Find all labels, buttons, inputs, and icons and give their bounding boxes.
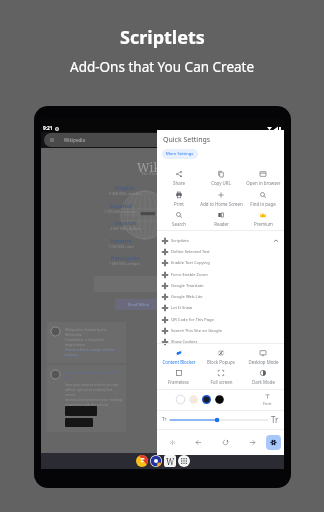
button[interactable]: Full screen bbox=[200, 369, 242, 385]
button[interactable]: Scriptlets bbox=[157, 235, 284, 246]
button[interactable]: Download Wikipedia for Android or iOS bbox=[47, 365, 126, 432]
staticText: Enable Text Copying bbox=[171, 260, 210, 266]
button[interactable]: Text size bbox=[170, 416, 268, 424]
button[interactable] bbox=[94, 276, 158, 292]
staticText: Force Enable Zoom bbox=[171, 272, 208, 278]
button[interactable]: Settings bbox=[266, 435, 281, 450]
button[interactable]: Share bbox=[157, 170, 200, 186]
staticText: W bbox=[166, 456, 175, 467]
staticText: Tr bbox=[162, 416, 167, 423]
button[interactable]: Block Popups bbox=[200, 349, 242, 365]
staticText: Wikipedia is hosted by the Wikimedia Fou… bbox=[65, 327, 121, 357]
button[interactable]: QR Code for This Page bbox=[157, 314, 284, 325]
button[interactable]: Desktop Mode bbox=[242, 349, 284, 365]
staticText: Show Cookies bbox=[171, 339, 198, 345]
button[interactable]: Reload bbox=[212, 429, 239, 455]
staticText: The Free Encyclopedia bbox=[141, 171, 185, 176]
staticText: Copy URL bbox=[211, 180, 231, 186]
staticText: 1 742 000+ voci bbox=[108, 244, 134, 249]
button[interactable]: Background colour bbox=[214, 394, 225, 405]
staticText: More Settings bbox=[166, 151, 194, 157]
button[interactable]: Frameless bbox=[157, 369, 200, 385]
staticText: Google Web Lite bbox=[171, 294, 203, 300]
button[interactable]: Enable Text Copying bbox=[157, 257, 284, 268]
button[interactable]: Tabs bbox=[159, 429, 185, 455]
button[interactable]: All apps bbox=[178, 455, 190, 467]
staticText: Scriptlets bbox=[120, 25, 205, 50]
staticText: 2 667 000+ Artikel bbox=[110, 226, 141, 231]
staticText: Content Blocker bbox=[162, 359, 196, 365]
staticText: Define Selected Text bbox=[171, 249, 210, 255]
staticText: Add-Ons that You Can Create bbox=[70, 58, 255, 76]
staticText: Add to Home Screen bbox=[200, 201, 242, 207]
staticText: Wikipedia bbox=[137, 159, 197, 175]
button[interactable]: Show Cookies bbox=[157, 336, 284, 347]
staticText: Save your favorite articles to read offl… bbox=[65, 382, 123, 417]
button[interactable]: Background colour bbox=[188, 394, 199, 405]
staticText: Quick Settings bbox=[163, 135, 211, 145]
button[interactable]: Add to Home Screen bbox=[200, 191, 242, 207]
button[interactable]: Google Translate bbox=[157, 280, 284, 291]
staticText: 6 458 000+ articles bbox=[109, 191, 141, 196]
staticText: Block Popups bbox=[207, 359, 235, 365]
staticText: Premium bbox=[254, 221, 273, 227]
button[interactable]: Font bbox=[263, 393, 272, 406]
staticText: Wikipedia bbox=[64, 137, 86, 143]
button[interactable]: Wikipedia bbox=[164, 455, 176, 467]
staticText: Share bbox=[173, 180, 185, 186]
staticText: Español bbox=[110, 202, 132, 209]
button[interactable]: Page info bbox=[44, 133, 262, 147]
staticText: 9:21 bbox=[43, 125, 53, 132]
staticText: Search This Site on Google bbox=[171, 328, 222, 334]
staticText: Full screen bbox=[210, 379, 233, 385]
button[interactable]: Chrome bbox=[150, 455, 162, 467]
staticText: QR Code for This Page bbox=[171, 317, 214, 323]
staticText: Dark Mode bbox=[252, 379, 275, 385]
staticText: Tr bbox=[271, 414, 279, 425]
staticText: Reader bbox=[214, 221, 229, 227]
button[interactable]: Background colour bbox=[201, 394, 212, 405]
staticText: Deutsch bbox=[114, 219, 137, 226]
staticText: Italiano bbox=[110, 237, 132, 244]
button[interactable]: Find in page bbox=[242, 191, 284, 207]
staticText: Scriptlets bbox=[171, 238, 189, 244]
staticText: Download Wikipedia for Android or iOS bbox=[65, 370, 121, 380]
button[interactable]: Back bbox=[185, 429, 212, 455]
staticText: 1 755 000+ artículos bbox=[104, 209, 138, 214]
staticText: Let It Snow bbox=[171, 305, 193, 311]
staticText: Desktop Mode bbox=[248, 359, 279, 365]
button[interactable]: Open in browser bbox=[242, 170, 284, 186]
button[interactable]: Copy URL bbox=[200, 170, 242, 186]
button[interactable]: Search bbox=[157, 211, 200, 227]
button[interactable]: Content Blocker bbox=[157, 349, 200, 365]
staticText: Português bbox=[111, 254, 140, 261]
button[interactable]: Read Wikip bbox=[115, 299, 161, 310]
button[interactable]: Premium bbox=[242, 211, 284, 227]
staticText: Frameless bbox=[168, 379, 189, 385]
staticText: Search bbox=[172, 221, 186, 227]
button[interactable]: Background colour bbox=[175, 394, 186, 405]
button[interactable]: Google Web Lite bbox=[157, 291, 284, 302]
button[interactable]: Forward bbox=[239, 429, 266, 455]
staticText: Font bbox=[263, 401, 272, 406]
button[interactable]: Print bbox=[157, 191, 200, 207]
staticText: You can support our work with a donation… bbox=[65, 348, 121, 358]
button[interactable]: Wikipedia is hosted by the Wikimedia Fou… bbox=[47, 322, 126, 363]
staticText: Read Wikip bbox=[128, 302, 149, 307]
button[interactable]: Reader bbox=[200, 211, 242, 227]
button[interactable]: Browser bbox=[136, 455, 148, 467]
button[interactable]: Search This Site on Google bbox=[157, 325, 284, 336]
staticText: 1 083 000+ artigos bbox=[109, 261, 141, 266]
staticText: Google Translate bbox=[171, 283, 204, 289]
button[interactable]: More Settings bbox=[162, 149, 198, 159]
staticText: English bbox=[115, 184, 135, 191]
button[interactable]: Let It Snow bbox=[157, 302, 284, 313]
button[interactable]: Force Enable Zoom bbox=[157, 269, 284, 280]
staticText: Open in browser bbox=[246, 180, 281, 186]
staticText: Print bbox=[174, 201, 184, 207]
button[interactable]: Define Selected Text bbox=[157, 246, 284, 257]
button[interactable]: Dark Mode bbox=[242, 369, 284, 385]
